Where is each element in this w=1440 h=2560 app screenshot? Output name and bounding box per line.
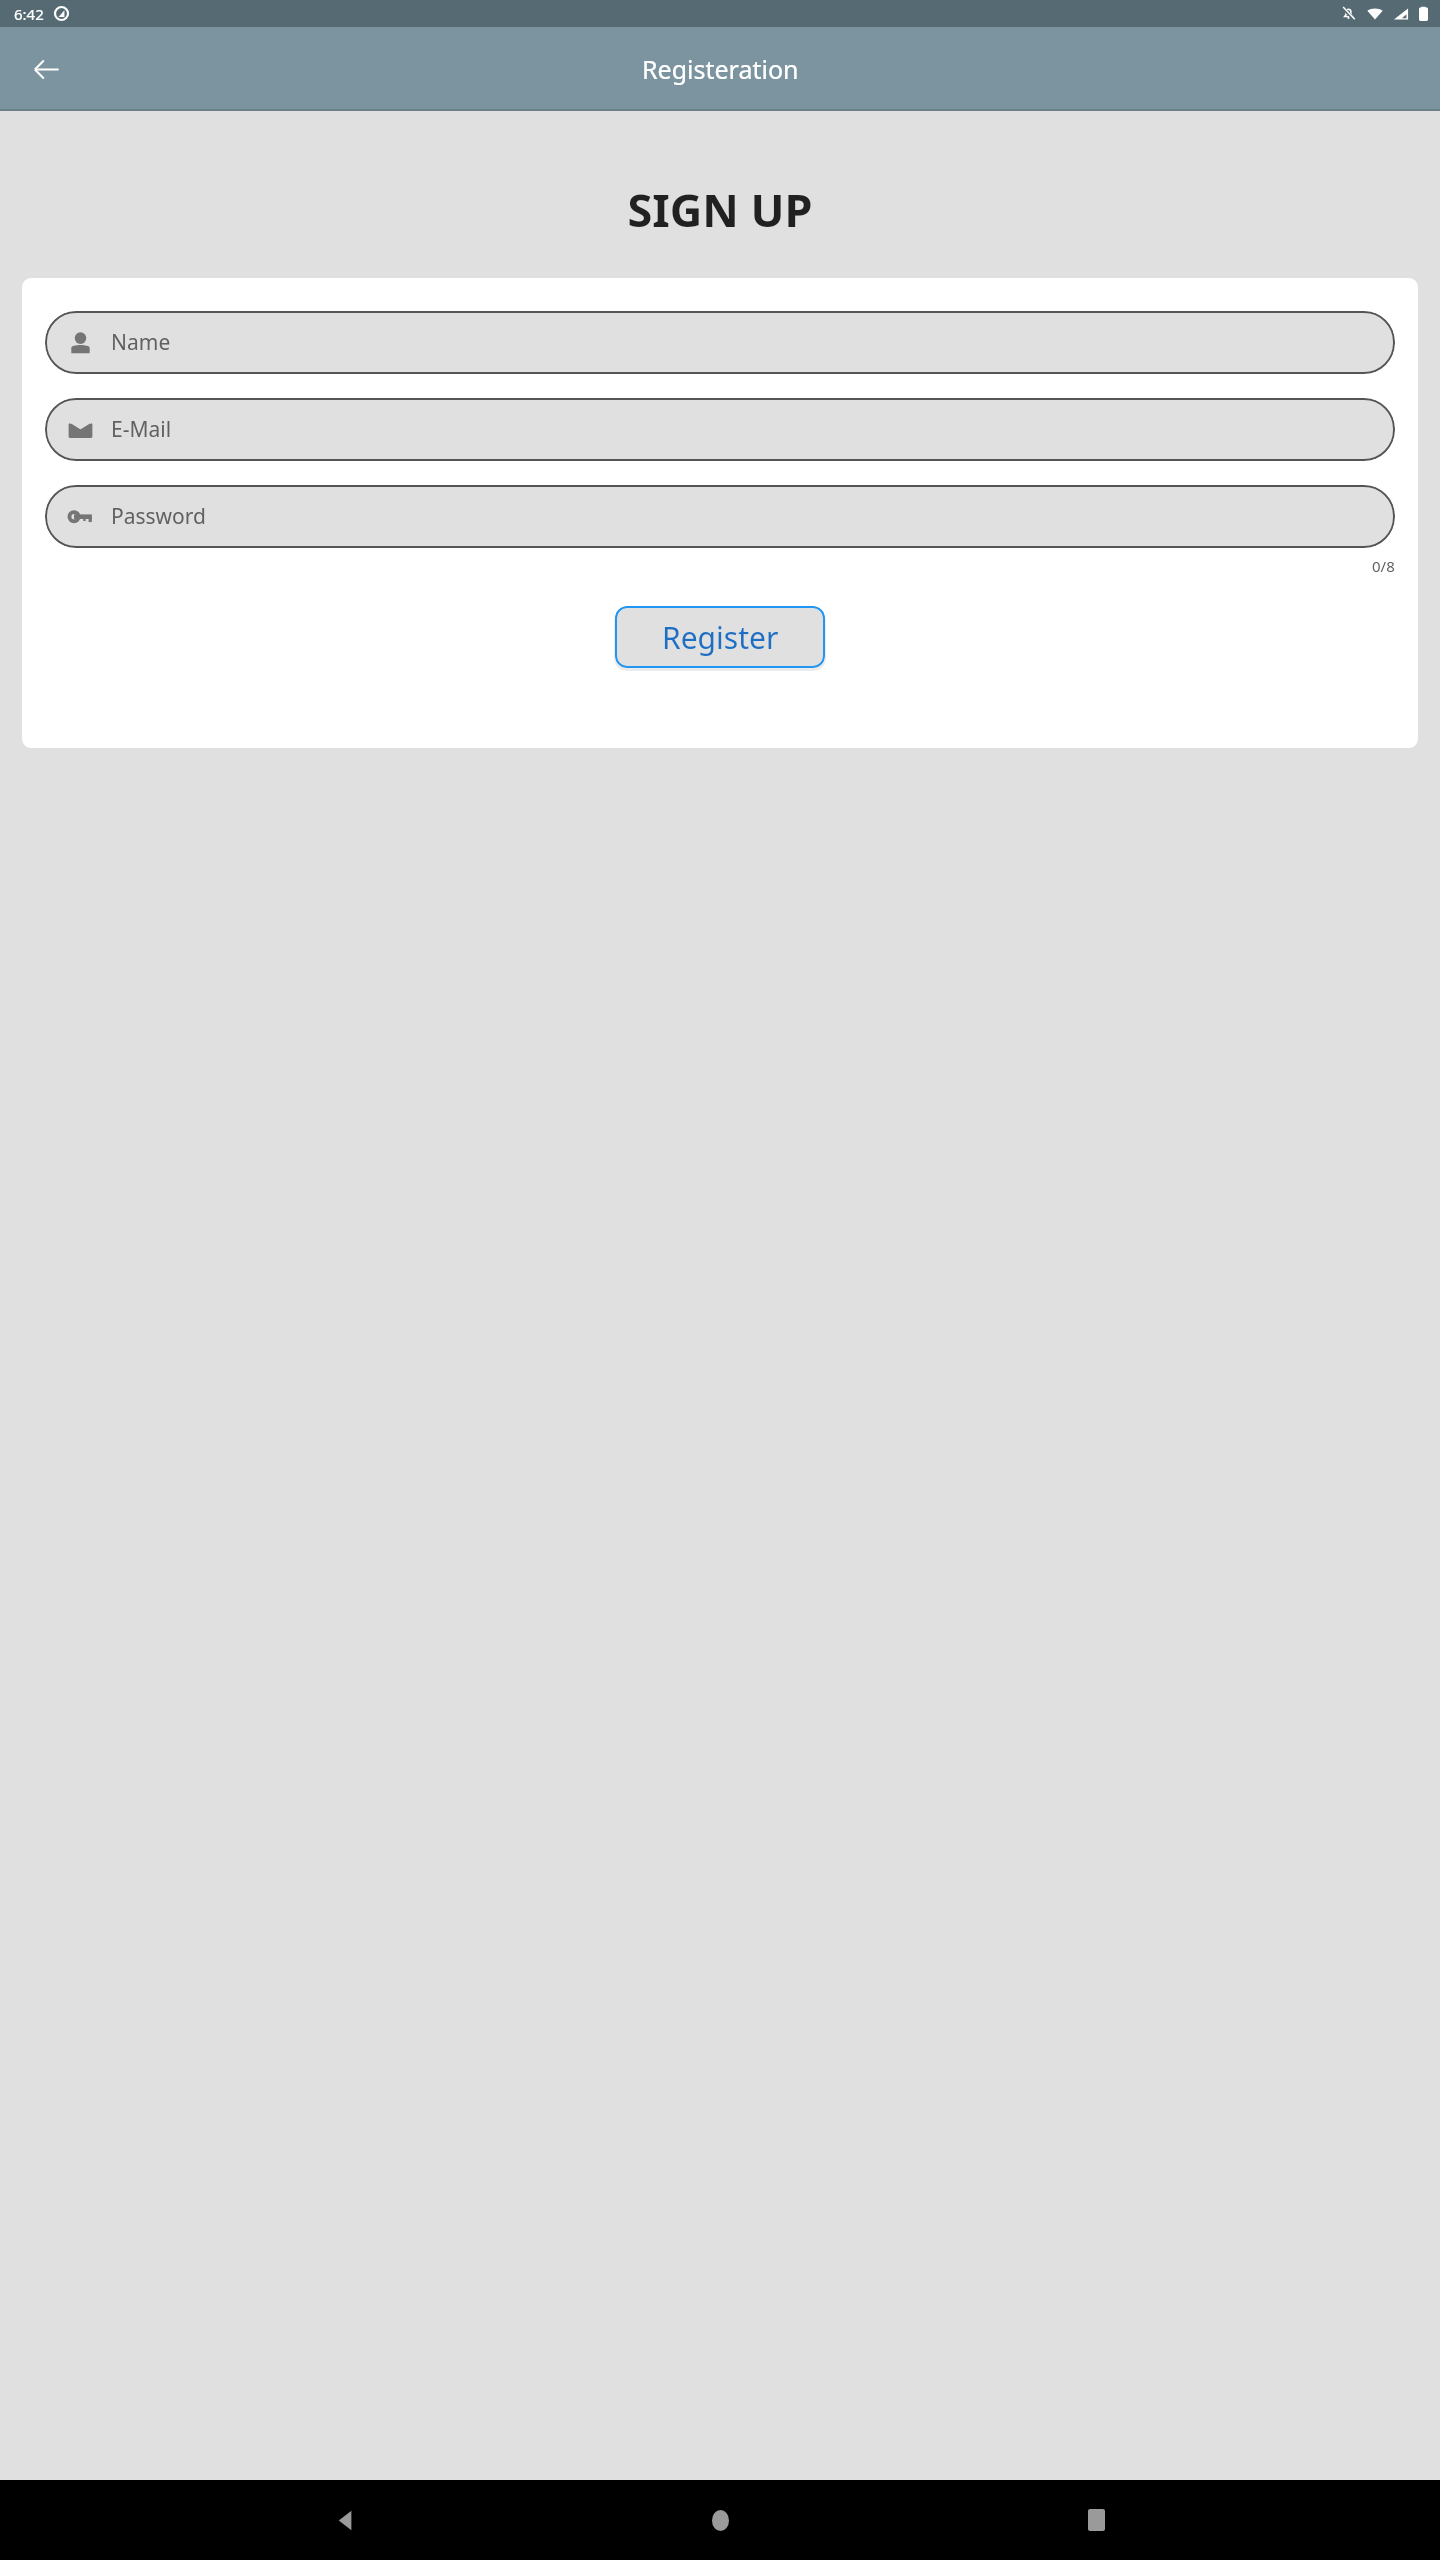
button[interactable]: Password <box>45 485 1395 548</box>
button[interactable]: E-Mail <box>45 398 1395 461</box>
staticText: Password <box>111 502 206 531</box>
button[interactable]: Recent apps <box>1065 2489 1127 2551</box>
staticText: Register <box>662 617 779 658</box>
button[interactable]: Back <box>314 2489 376 2551</box>
button[interactable]: Back <box>20 43 72 95</box>
button[interactable]: Home <box>689 2489 751 2551</box>
button[interactable]: Name <box>45 311 1395 374</box>
staticText: SIGN UP <box>627 179 813 240</box>
staticText: Registeration <box>642 52 799 86</box>
staticText: 6:42 <box>14 4 44 24</box>
button[interactable]: Register <box>615 606 825 668</box>
staticText: E-Mail <box>111 415 172 444</box>
staticText: 0/8 <box>1372 556 1395 576</box>
staticText: Name <box>111 328 171 357</box>
